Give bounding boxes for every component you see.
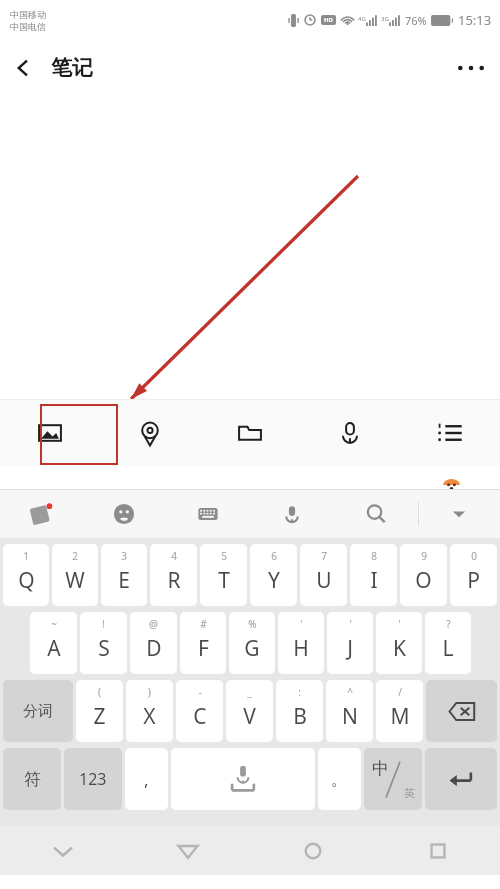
- button[interactable]: Back: [0, 49, 42, 87]
- button[interactable]: :: [276, 680, 323, 742]
- staticText: S: [98, 634, 110, 663]
- staticText: D: [146, 634, 162, 663]
- button[interactable]: 9: [400, 544, 447, 606]
- button[interactable]: Add location: [121, 405, 179, 461]
- button[interactable]: Chinese English toggle: [364, 748, 422, 810]
- staticText: M: [390, 702, 410, 731]
- staticText: ~: [51, 617, 57, 631]
- staticText: HD: [324, 16, 333, 24]
- staticText: B: [293, 702, 307, 731]
- button[interactable]: Enter: [425, 748, 497, 810]
- staticText: !: [102, 617, 105, 631]
- button[interactable]: 8: [350, 544, 397, 606]
- staticText: U: [316, 566, 332, 595]
- button[interactable]: 分词: [3, 680, 73, 742]
- staticText: 。: [331, 769, 348, 790]
- button[interactable]: 5: [200, 544, 247, 606]
- button[interactable]: Home: [283, 826, 343, 875]
- button[interactable]: #: [180, 612, 226, 674]
- button[interactable]: Numbered list: [421, 405, 479, 461]
- staticText: G: [244, 634, 260, 663]
- staticText: 3G: [381, 15, 389, 23]
- button[interactable]: ': [327, 612, 373, 674]
- staticText: 1: [23, 549, 29, 563]
- staticText: X: [143, 702, 156, 731]
- staticText: ': [300, 617, 303, 631]
- button[interactable]: ,: [125, 748, 168, 810]
- button[interactable]: 4: [150, 544, 197, 606]
- button[interactable]: Search: [334, 490, 418, 538]
- button[interactable]: 123: [64, 748, 122, 810]
- staticText: A: [47, 634, 61, 663]
- staticText: ': [349, 617, 352, 631]
- button[interactable]: Insert image: [21, 405, 79, 461]
- button[interactable]: %: [229, 612, 275, 674]
- button[interactable]: Recents: [408, 826, 468, 875]
- button[interactable]: Emoji: [82, 490, 166, 538]
- button[interactable]: ': [278, 612, 324, 674]
- button[interactable]: Back: [158, 826, 218, 875]
- button[interactable]: (: [76, 680, 123, 742]
- button[interactable]: /: [376, 680, 423, 742]
- staticText: 符: [24, 769, 41, 790]
- button[interactable]: Voice input: [321, 405, 379, 461]
- staticText: E: [118, 566, 130, 595]
- staticText: /: [398, 685, 402, 699]
- button[interactable]: Keyboard layout: [166, 490, 250, 538]
- staticText: Z: [93, 702, 106, 731]
- button[interactable]: Space: [171, 748, 315, 810]
- button[interactable]: Collapse: [418, 490, 500, 538]
- button[interactable]: Voice: [250, 490, 334, 538]
- staticText: 笔记: [51, 55, 93, 81]
- button[interactable]: _: [226, 680, 273, 742]
- staticText: 中国电信: [10, 21, 46, 32]
- button[interactable]: ): [126, 680, 173, 742]
- button[interactable]: -: [176, 680, 223, 742]
- staticText: 英: [404, 786, 415, 800]
- staticText: 8: [371, 549, 377, 563]
- staticText: T: [218, 566, 230, 595]
- staticText: L: [442, 634, 454, 663]
- button[interactable]: Assistant: [440, 473, 462, 495]
- button[interactable]: Backspace: [426, 680, 497, 742]
- staticText: 2: [72, 549, 78, 563]
- staticText: 15:13: [458, 11, 492, 29]
- button[interactable]: @: [130, 612, 177, 674]
- staticText: 4: [171, 549, 177, 563]
- staticText: J: [347, 634, 353, 663]
- staticText: #: [200, 617, 207, 631]
- staticText: ): [148, 685, 151, 699]
- staticText: ^: [347, 685, 353, 699]
- button[interactable]: 1: [3, 544, 49, 606]
- button[interactable]: 符: [3, 748, 61, 810]
- staticText: 中国移动: [10, 9, 46, 20]
- button[interactable]: 3: [101, 544, 147, 606]
- button[interactable]: More options: [442, 53, 500, 83]
- button[interactable]: Attach file: [221, 405, 279, 461]
- button[interactable]: Sogou menu: [0, 490, 82, 538]
- staticText: 中: [372, 758, 389, 779]
- button[interactable]: 。: [318, 748, 361, 810]
- staticText: (: [98, 685, 101, 699]
- staticText: N: [342, 702, 358, 731]
- staticText: K: [393, 634, 406, 663]
- button[interactable]: ?: [425, 612, 471, 674]
- staticText: I: [370, 566, 378, 595]
- staticText: H: [293, 634, 309, 663]
- staticText: Y: [268, 566, 280, 595]
- staticText: @: [149, 617, 158, 631]
- staticText: _: [247, 685, 252, 699]
- button[interactable]: ^: [326, 680, 373, 742]
- button[interactable]: 0: [450, 544, 497, 606]
- staticText: ,: [144, 768, 149, 791]
- button[interactable]: 2: [52, 544, 98, 606]
- button[interactable]: 7: [300, 544, 347, 606]
- staticText: 7: [321, 549, 327, 563]
- button[interactable]: ': [376, 612, 422, 674]
- button[interactable]: ~: [30, 612, 77, 674]
- staticText: Q: [18, 566, 35, 595]
- staticText: W: [65, 566, 85, 595]
- button[interactable]: !: [80, 612, 127, 674]
- button[interactable]: Hide keyboard: [33, 826, 93, 875]
- button[interactable]: 6: [250, 544, 297, 606]
